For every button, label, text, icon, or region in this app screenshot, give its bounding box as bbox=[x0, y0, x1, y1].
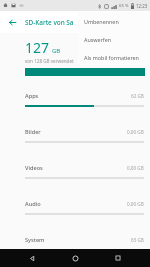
button[interactable]: Zurück bbox=[4, 14, 20, 30]
button[interactable]: Audio bbox=[0, 193, 150, 229]
button[interactable]: Bilder bbox=[0, 121, 150, 157]
staticText: Audio bbox=[25, 200, 41, 208]
staticText: 0,00 GB bbox=[127, 129, 144, 135]
staticText: Als mobil formatieren bbox=[84, 54, 139, 61]
button[interactable]: Übersicht bbox=[107, 249, 129, 267]
button[interactable]: Als mobil formatieren bbox=[78, 48, 150, 66]
button[interactable]: Zurück bbox=[21, 249, 43, 267]
staticText: System bbox=[25, 236, 45, 244]
staticText: 62 GB bbox=[131, 93, 144, 99]
staticText: 0,00 GB bbox=[127, 201, 144, 207]
staticText: SD-Karte von Sa bbox=[25, 18, 74, 27]
staticText: 65 % bbox=[119, 3, 129, 9]
staticText: Videos bbox=[25, 164, 43, 172]
button[interactable]: Auswerfen bbox=[78, 30, 150, 48]
staticText: 0,00 GB bbox=[127, 165, 144, 171]
button[interactable]: Startseite bbox=[64, 249, 86, 267]
button[interactable]: Umbenennen bbox=[78, 12, 150, 30]
button[interactable]: System bbox=[0, 229, 150, 249]
staticText: GB bbox=[52, 47, 61, 55]
staticText: 65 GB bbox=[131, 237, 144, 243]
staticText: 127 bbox=[25, 38, 50, 57]
staticText: Auswerfen bbox=[84, 36, 112, 43]
button[interactable]: Videos bbox=[0, 157, 150, 193]
staticText: Apps bbox=[25, 92, 39, 100]
staticText: Umbenennen bbox=[84, 18, 119, 25]
button[interactable]: Apps bbox=[0, 85, 150, 121]
staticText: von 128 GB verwendet bbox=[25, 58, 74, 64]
staticText: Bilder bbox=[25, 128, 41, 136]
staticText: 12:23 bbox=[136, 3, 148, 9]
